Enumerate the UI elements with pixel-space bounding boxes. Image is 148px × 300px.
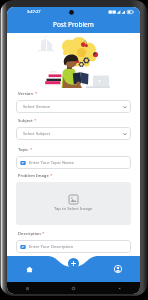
staticText: * <box>49 173 53 179</box>
button[interactable]: Add <box>68 258 79 269</box>
button[interactable]: Profile <box>96 256 140 282</box>
staticText: Topic <box>18 147 29 153</box>
staticText: * <box>41 231 45 237</box>
staticText: * <box>29 147 33 153</box>
staticText: Post Problem <box>53 20 94 29</box>
staticText: 3:47:27 <box>27 9 41 14</box>
button[interactable]: Select Subject <box>16 127 131 140</box>
staticText: Enter Your Topic Name <box>29 160 74 166</box>
staticText: Enter Your Description <box>29 244 74 250</box>
staticText: Problem Image <box>18 173 49 179</box>
staticText: Version <box>18 91 34 97</box>
button[interactable]: Home <box>7 256 52 282</box>
button[interactable]: Enter Your Topic Name <box>16 156 131 169</box>
staticText: * <box>33 118 37 124</box>
staticText: * <box>34 91 38 97</box>
staticText: Select Subject <box>23 131 51 137</box>
staticText: Tap to Select Image <box>54 206 93 212</box>
staticText: Select Version <box>23 104 51 110</box>
button[interactable]: Select Version <box>16 100 131 113</box>
button[interactable]: Tap to Select Image <box>16 182 131 225</box>
button[interactable]: Enter Your Description <box>16 240 131 253</box>
staticText: Subject <box>18 118 33 124</box>
staticText: Description <box>18 231 41 237</box>
